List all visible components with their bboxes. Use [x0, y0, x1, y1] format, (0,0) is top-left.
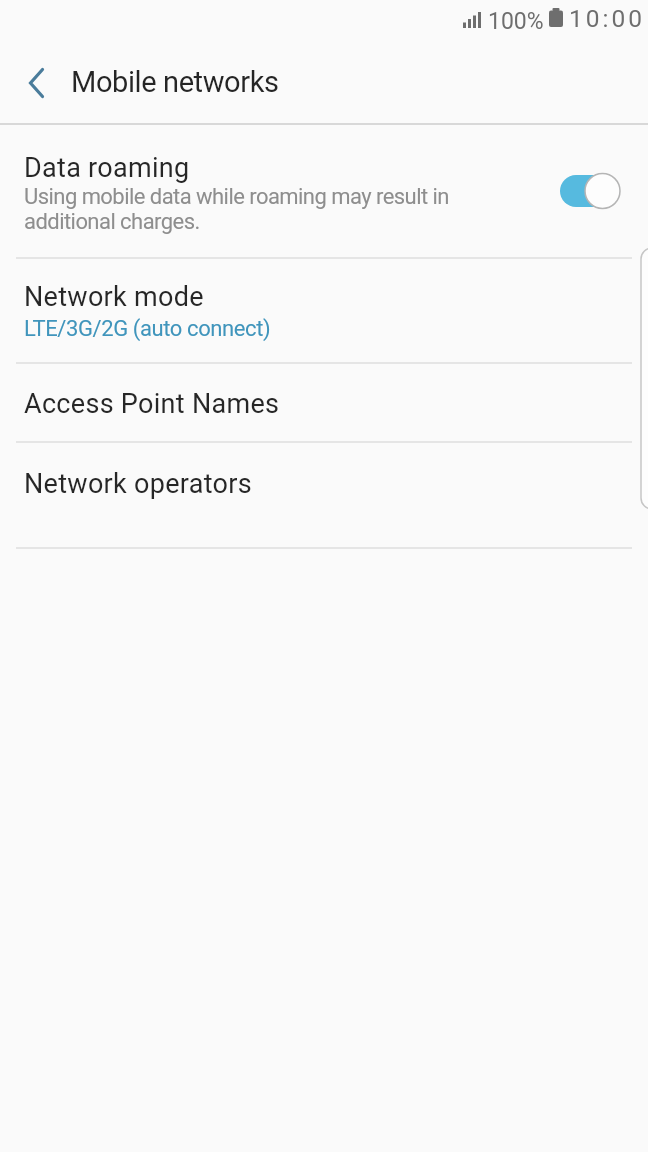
button[interactable]: Network operators [0, 442, 648, 547]
staticText: 100% [488, 8, 544, 35]
button[interactable]: Data roaming [0, 125, 648, 257]
button[interactable]: Network mode [0, 258, 648, 362]
staticText: Network operators [24, 468, 252, 500]
staticText: Access Point Names [24, 388, 280, 420]
staticText: Data roaming [24, 152, 190, 184]
staticText: Using mobile data while roaming may resu… [24, 184, 449, 235]
button[interactable]: Access Point Names [0, 363, 648, 441]
staticText: Mobile networks [71, 65, 279, 99]
button[interactable] [14, 61, 58, 105]
staticText: Network mode [24, 281, 204, 313]
staticText: LTE/3G/2G (auto connect) [24, 316, 271, 342]
staticText: 10:00 [569, 4, 646, 33]
